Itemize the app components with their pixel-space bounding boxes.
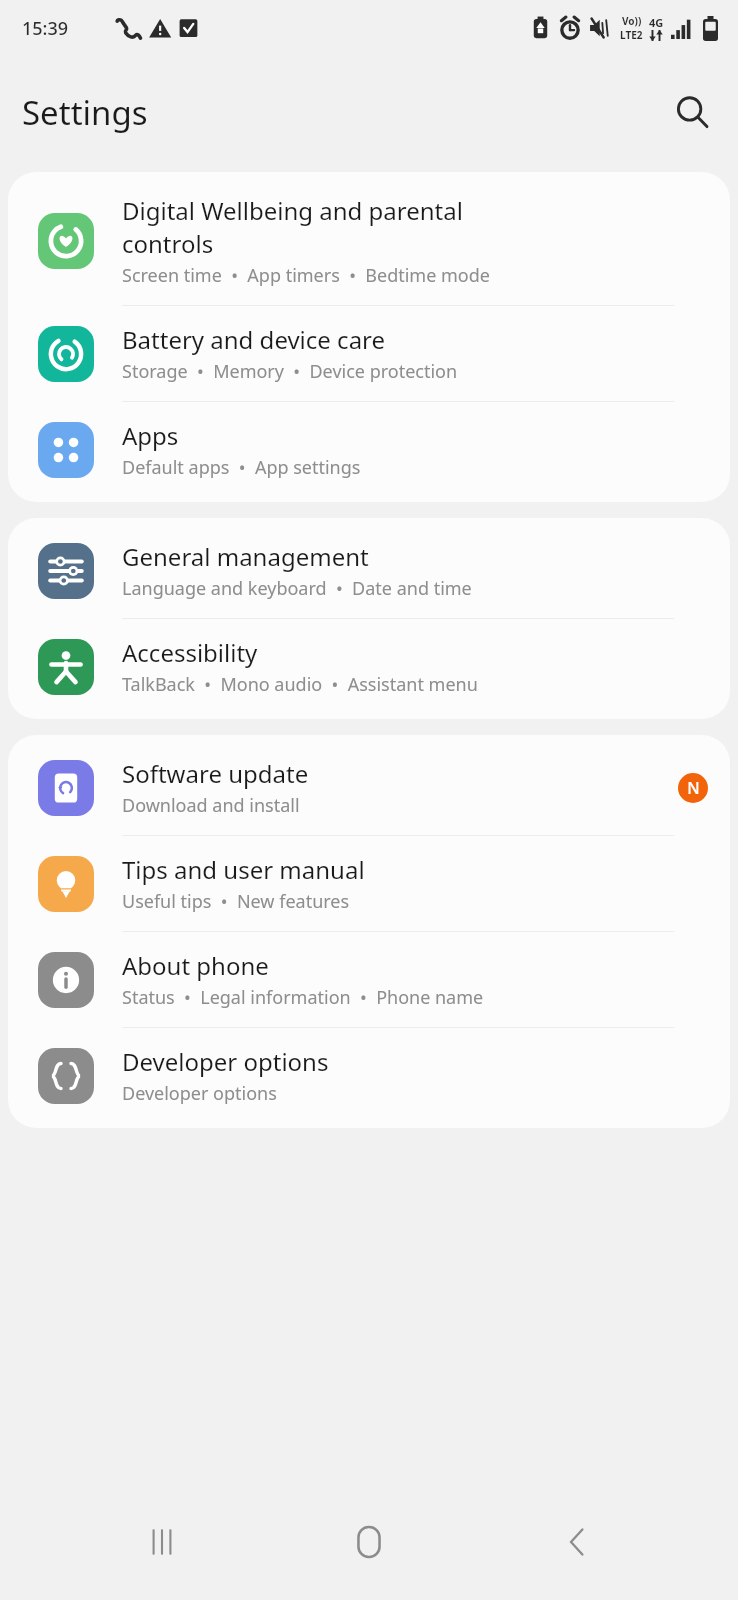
staticText: Software update [122,757,309,790]
button[interactable]: Battery and device care [8,306,730,402]
staticText: About phone [122,949,269,982]
staticText: Apps [122,419,179,452]
staticText: Accessibility [122,636,258,669]
button[interactable]: Tips and user manual [8,836,730,932]
staticText: General management [122,540,369,573]
button[interactable]: Back [531,1496,623,1588]
button[interactable]: General management [8,523,730,619]
staticText: Developer options [122,1045,329,1078]
button[interactable]: Apps [8,402,730,497]
staticText: N [687,777,700,799]
staticText: TalkBack • Mono audio • Assistant menu [122,672,478,697]
button[interactable]: Developer options [8,1028,730,1123]
staticText: LTE2 [620,28,643,42]
staticText: Download and install [122,793,300,818]
button[interactable]: Home [323,1496,415,1588]
staticText: Status • Legal information • Phone name [122,985,484,1010]
staticText: Useful tips • New features [122,889,350,914]
button[interactable]: Search [662,82,722,142]
staticText: Settings [22,90,148,135]
button[interactable]: About phone [8,932,730,1028]
staticText: Storage • Memory • Device protection [122,359,458,384]
staticText: Screen time • App timers • Bedtime mode [122,263,490,288]
button[interactable]: Recent apps [116,1496,208,1588]
staticText: Default apps • App settings [122,455,361,480]
staticText: Battery and device care [122,323,386,356]
button[interactable]: Digital Wellbeing and parental controls [8,177,730,306]
staticText: 15:39 [22,16,69,41]
staticText: Developer options [122,1081,277,1106]
staticText: Language and keyboard • Date and time [122,576,472,601]
button[interactable]: Accessibility [8,619,730,714]
button[interactable]: Software update [8,740,730,836]
staticText: Digital Wellbeing and parental controls [122,194,463,260]
staticText: 4G [649,15,664,30]
staticText: Tips and user manual [122,853,365,886]
staticText: Vo)) [622,14,642,28]
